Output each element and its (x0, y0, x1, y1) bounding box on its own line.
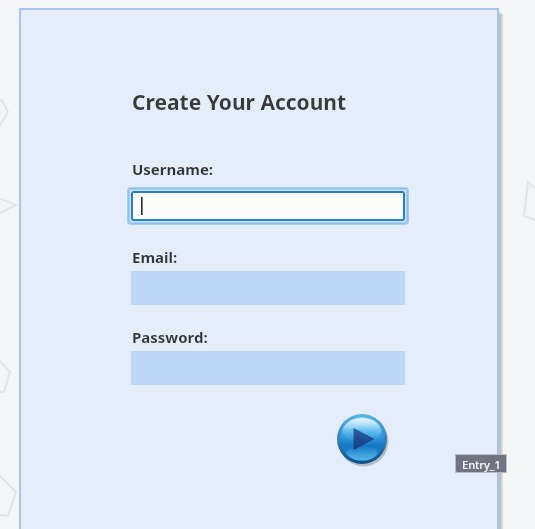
staticText: Password: (132, 327, 208, 347)
staticText: Create Your Account (132, 88, 347, 117)
staticText: Entry_1 (462, 457, 501, 472)
button[interactable]: Entry_1 (455, 454, 507, 473)
staticText: Email: (132, 247, 178, 267)
button[interactable]: Submit (336, 413, 388, 465)
staticText: Username: (132, 159, 214, 179)
button[interactable]: Username text field (131, 191, 405, 221)
